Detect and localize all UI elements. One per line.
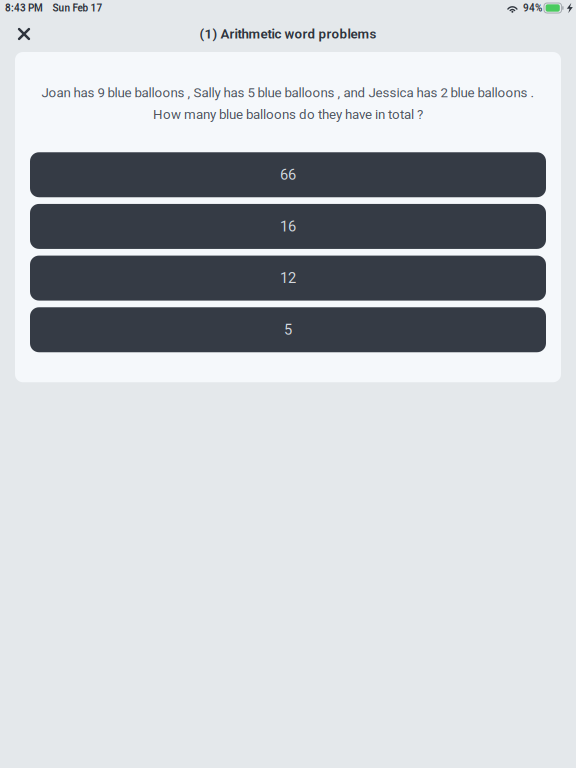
staticText: 16 <box>280 218 296 235</box>
button[interactable]: 12 <box>30 256 546 301</box>
staticText: 66 <box>280 166 296 183</box>
staticText: 94% <box>523 2 542 14</box>
staticText: Joan has 9 blue balloons , Sally has 5 b… <box>41 85 534 101</box>
staticText: 12 <box>280 269 296 287</box>
staticText: (1) Arithmetic word problems <box>199 26 376 42</box>
staticText: 8:43 PM <box>5 2 43 14</box>
button[interactable]: 16 <box>30 204 546 249</box>
button[interactable]: 66 <box>30 152 546 197</box>
staticText: How many blue balloons do they have in t… <box>153 107 423 122</box>
button[interactable]: 5 <box>30 307 546 352</box>
button[interactable]: Close <box>7 17 41 51</box>
staticText: Sun Feb 17 <box>52 2 102 14</box>
staticText: 5 <box>284 321 292 338</box>
